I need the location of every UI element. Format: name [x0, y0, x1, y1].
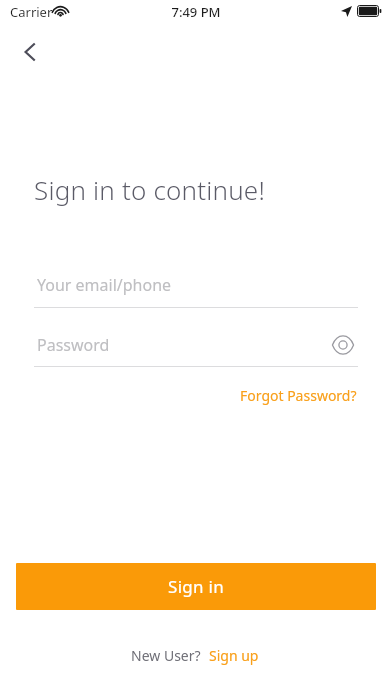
staticText: Sign in to continue!	[34, 172, 265, 207]
button[interactable]: Your email/phone	[34, 274, 358, 308]
button[interactable]: Password	[34, 334, 328, 356]
button[interactable]: Forgot Password?	[238, 384, 359, 407]
button[interactable]: Sign in	[16, 563, 376, 610]
staticText: Sign in	[168, 575, 225, 598]
button[interactable]: Sign up	[201, 644, 261, 667]
staticText: Sign up	[209, 646, 259, 665]
button[interactable]: Show password	[328, 330, 358, 360]
button[interactable]: Back	[8, 30, 52, 74]
staticText: New User?	[131, 646, 201, 665]
staticText: Carrier	[10, 3, 53, 21]
staticText: Forgot Password?	[240, 386, 357, 405]
staticText: Your email/phone	[37, 274, 172, 296]
staticText: 7:49 PM	[0, 3, 392, 21]
